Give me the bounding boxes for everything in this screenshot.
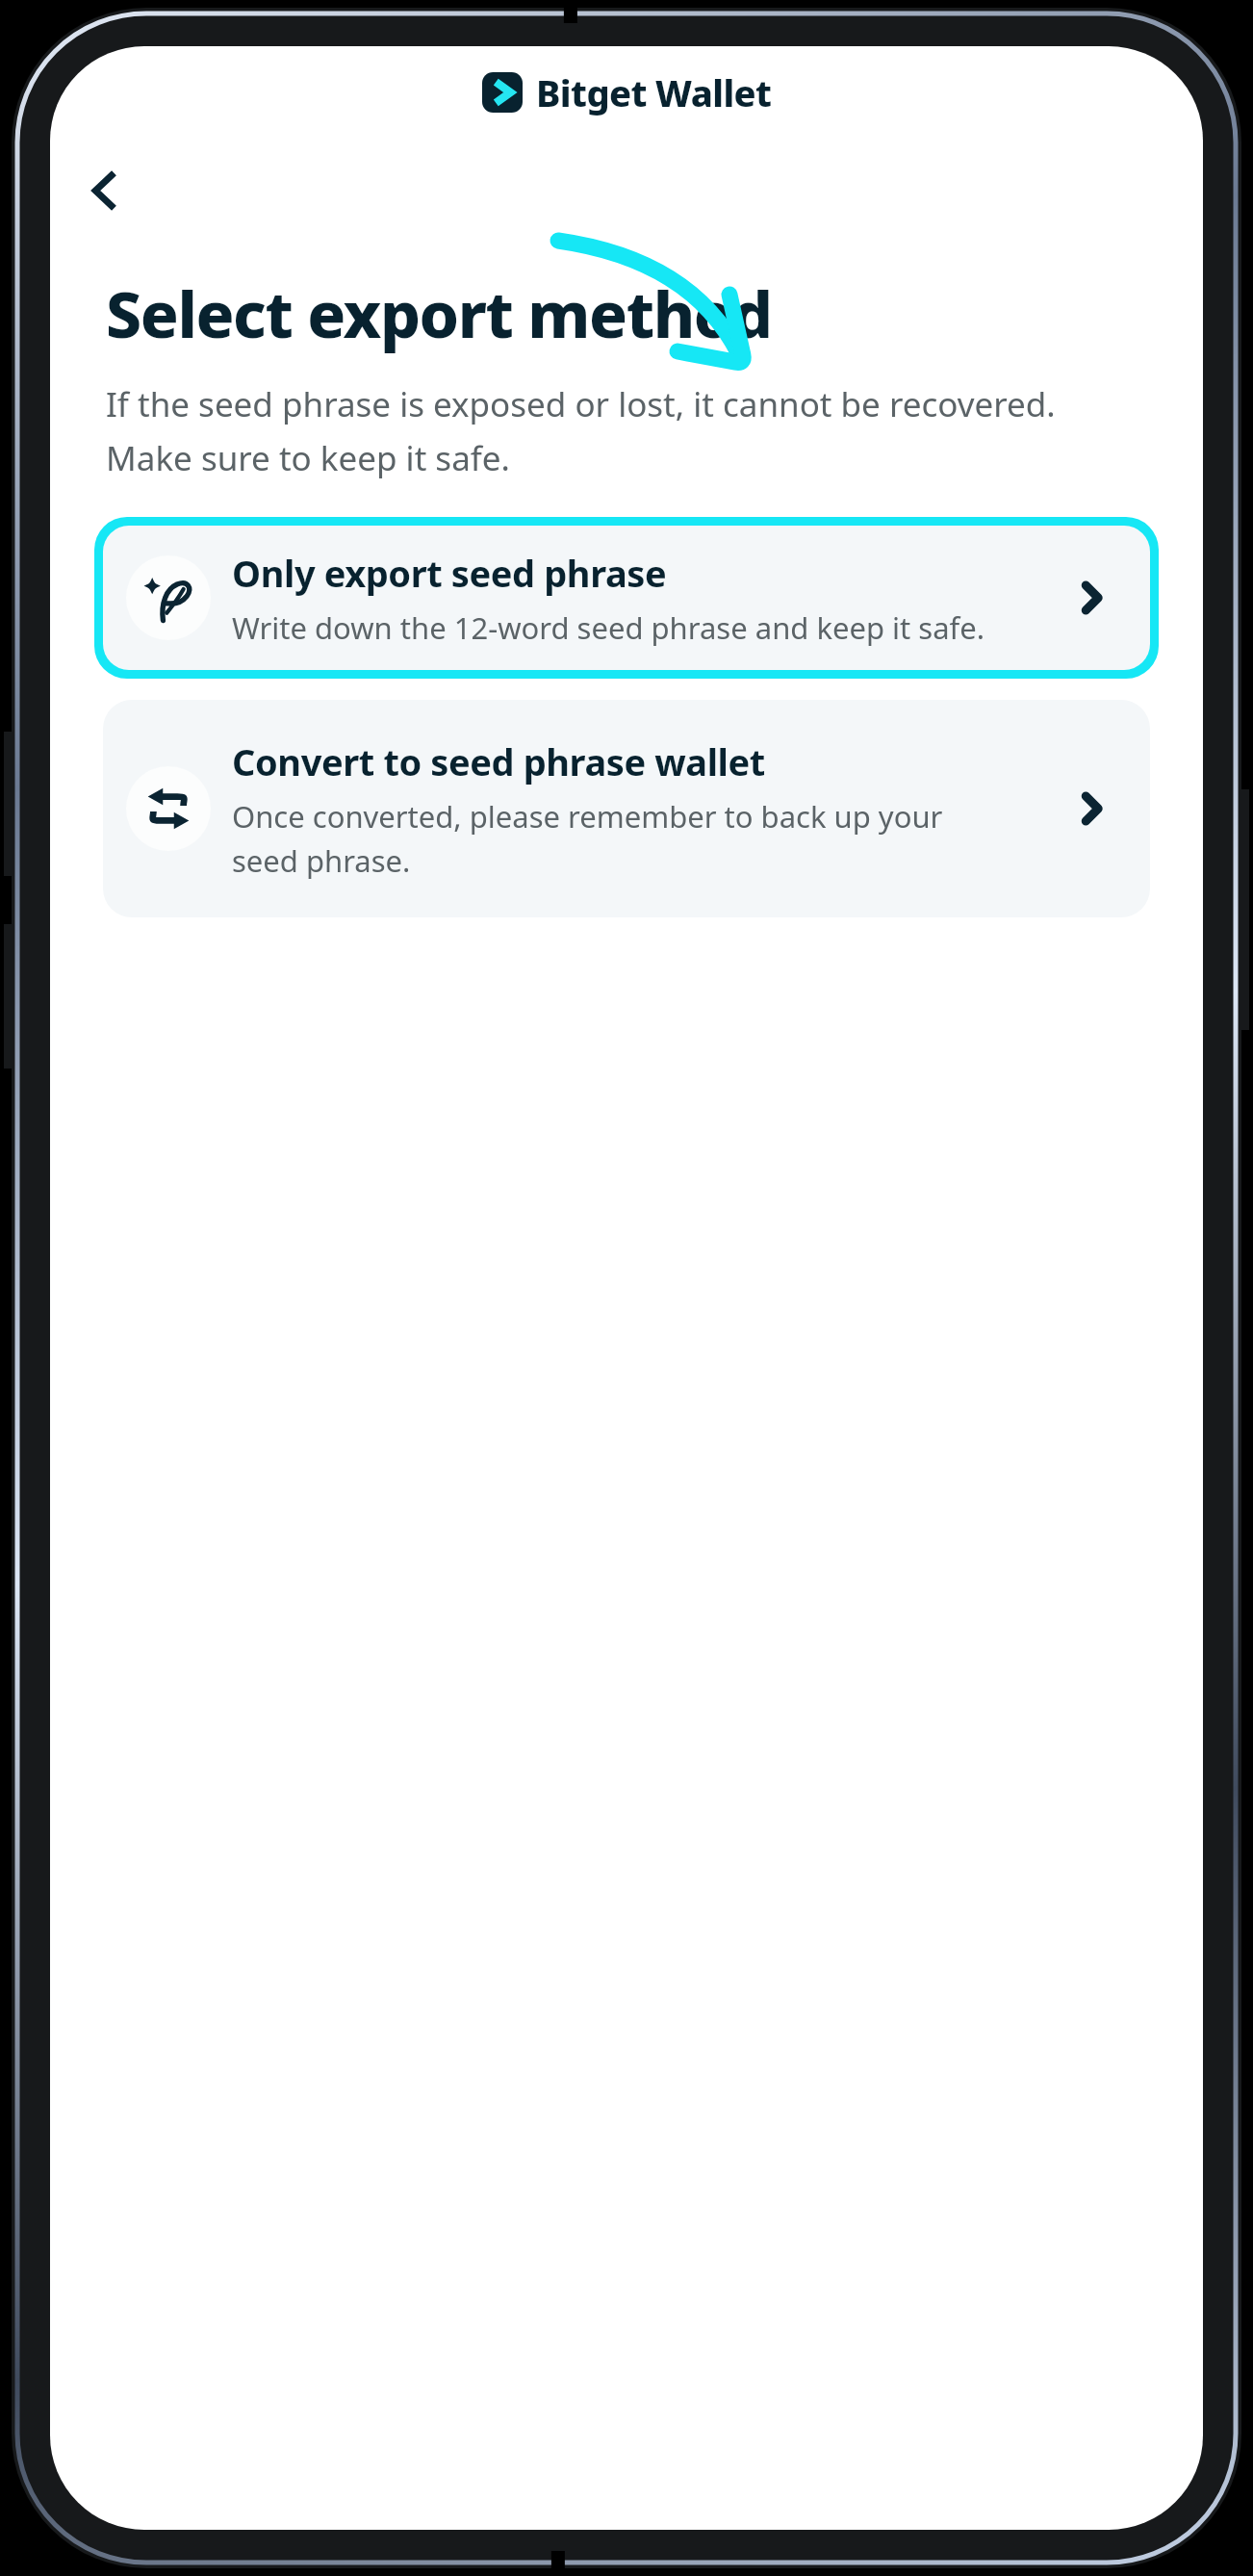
button[interactable]: Only export seed phrase (94, 517, 1159, 679)
staticText: Bitget Wallet (536, 67, 772, 117)
staticText: Only export seed phrase (232, 548, 667, 598)
staticText: Once converted, please remember to back … (232, 796, 943, 881)
staticText: If the seed phrase is exposed or lost, i… (106, 381, 1056, 480)
button[interactable]: Back (58, 144, 150, 237)
button[interactable]: Open Only export seed phrase (1058, 564, 1125, 631)
staticText: Convert to seed phrase wallet (232, 736, 765, 786)
button[interactable]: Open Convert to seed phrase wallet (1058, 775, 1125, 842)
button[interactable]: Convert to seed phrase wallet (103, 700, 1150, 917)
staticText: Write down the 12-word seed phrase and k… (232, 607, 985, 648)
staticText: Select export method (106, 270, 772, 356)
